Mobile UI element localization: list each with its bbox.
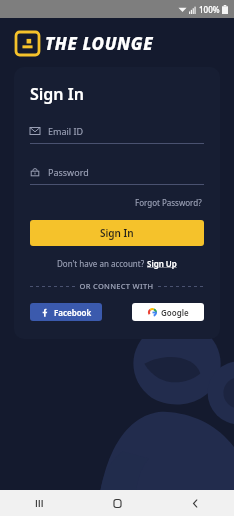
other: Password: [30, 167, 40, 177]
button[interactable]: Back: [156, 490, 234, 516]
button[interactable]: Email: [30, 125, 204, 144]
button[interactable]: Password: [30, 166, 204, 185]
staticText: Password: [48, 166, 89, 178]
button[interactable]: Recent apps: [0, 490, 78, 516]
staticText: THE LOUNGE: [45, 32, 154, 55]
button[interactable]: Home: [78, 490, 156, 516]
staticText: Sign In: [30, 83, 84, 105]
staticText: 100%: [199, 4, 220, 15]
button[interactable]: Sign In: [30, 220, 204, 246]
staticText: Forgot Password?: [135, 197, 202, 208]
staticText: Email ID: [48, 125, 84, 137]
other: Email: [30, 126, 40, 136]
staticText: OR CONNECT WITH: [75, 281, 158, 291]
staticText: Facebook: [54, 307, 92, 318]
button[interactable]: Facebook: [30, 303, 102, 321]
staticText: Sign Up: [147, 258, 177, 269]
button[interactable]: Sign Up: [147, 258, 177, 269]
button[interactable]: Google: [132, 303, 204, 321]
staticText: Google: [161, 307, 189, 318]
staticText: Don't have an account?: [57, 258, 147, 269]
staticText: Sign In: [100, 226, 134, 240]
button[interactable]: Forgot Password?: [133, 195, 204, 210]
